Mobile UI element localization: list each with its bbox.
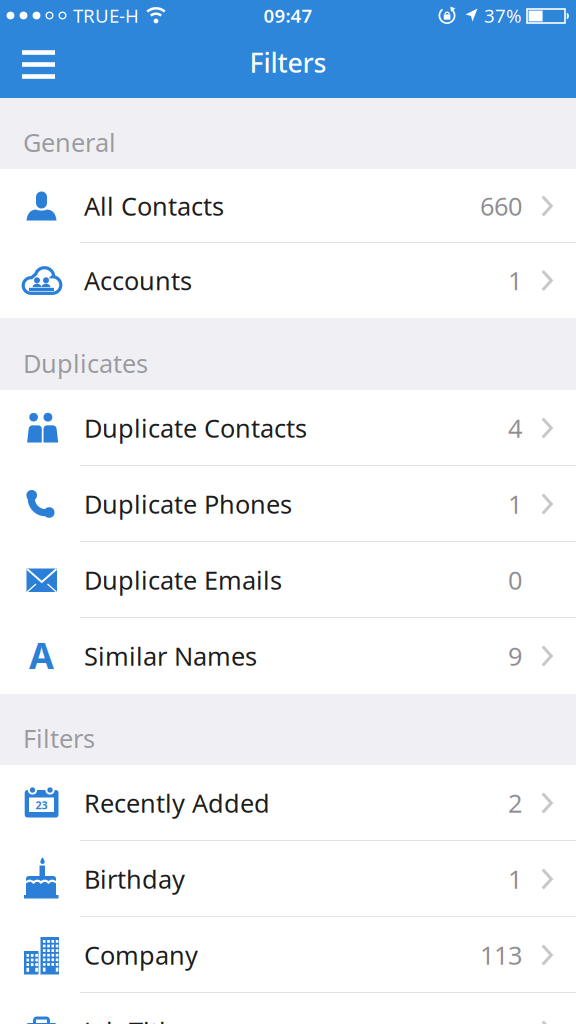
staticText: 4 xyxy=(508,411,522,445)
staticText: A xyxy=(29,631,54,679)
button[interactable]: Job Title xyxy=(0,993,576,1024)
button[interactable]: Accounts xyxy=(0,243,576,318)
staticText: TRUE-H xyxy=(73,3,139,28)
staticText: Job Title xyxy=(84,1014,180,1024)
button[interactable]: Duplicate Emails xyxy=(0,542,576,618)
button[interactable]: 23 xyxy=(0,765,576,841)
staticText: Duplicate Contacts xyxy=(84,411,307,445)
button[interactable]: Company xyxy=(0,917,576,993)
staticText: 37% xyxy=(484,3,522,28)
staticText: 2 xyxy=(508,786,522,820)
button[interactable]: A xyxy=(0,618,576,694)
staticText: Filters xyxy=(249,45,326,80)
staticText: Company xyxy=(84,938,198,972)
button[interactable]: Duplicate Phones xyxy=(0,466,576,542)
button[interactable]: Duplicate Contacts xyxy=(0,390,576,466)
staticText: 0 xyxy=(508,563,522,597)
staticText: Recently Added xyxy=(84,786,270,820)
staticText: Duplicate Emails xyxy=(84,563,282,597)
staticText: 23 xyxy=(35,798,47,812)
staticText: 9 xyxy=(508,639,522,673)
staticText: Duplicate Phones xyxy=(84,487,292,521)
staticText: 1 xyxy=(508,862,522,896)
button[interactable]: Birthday xyxy=(0,841,576,917)
staticText: Filters xyxy=(23,721,95,755)
staticText: General xyxy=(23,125,116,159)
staticText: All Contacts xyxy=(84,189,224,223)
staticText: Duplicates xyxy=(23,346,148,380)
staticText: 1 xyxy=(508,264,522,297)
button[interactable]: All Contacts xyxy=(0,169,576,243)
staticText: 113 xyxy=(480,938,522,972)
staticText: 1 xyxy=(508,487,522,521)
staticText: Accounts xyxy=(84,264,192,297)
staticText: 660 xyxy=(480,189,522,223)
staticText: Birthday xyxy=(84,862,185,896)
staticText: Similar Names xyxy=(84,639,257,673)
staticText: 09:47 xyxy=(263,3,312,28)
button[interactable]: Menu xyxy=(0,31,69,98)
